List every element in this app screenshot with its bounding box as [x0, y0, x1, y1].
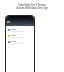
button[interactable] — [6, 33, 34, 39]
button[interactable] — [6, 39, 34, 45]
button[interactable] — [6, 27, 34, 33]
staticText: Take Note for X Device Across With Easy … — [0, 3, 64, 9]
